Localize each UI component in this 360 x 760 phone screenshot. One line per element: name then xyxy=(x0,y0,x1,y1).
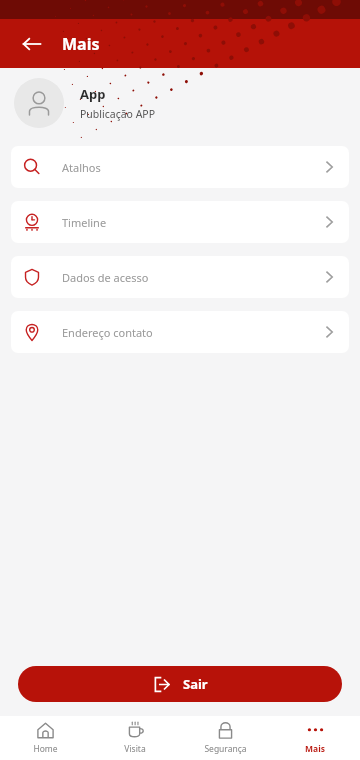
button[interactable]: Segurança xyxy=(180,716,270,760)
button[interactable]: Home xyxy=(0,716,90,760)
button[interactable]: Visita xyxy=(90,716,180,760)
button[interactable]: Timeline xyxy=(11,201,349,243)
staticText: Segurança xyxy=(204,743,247,755)
button[interactable]: Dados de acesso xyxy=(11,256,349,298)
button[interactable]: App xyxy=(0,68,360,138)
staticText: App xyxy=(80,85,106,103)
button[interactable]: Mais xyxy=(270,716,360,760)
button[interactable]: Atalhos xyxy=(11,146,349,188)
staticText: Visita xyxy=(124,743,146,755)
staticText: Endereço contato xyxy=(62,325,153,340)
staticText: Timeline xyxy=(62,215,107,230)
staticText: Sair xyxy=(183,675,208,693)
button[interactable]: Sair xyxy=(18,666,342,702)
staticText: Home xyxy=(33,743,58,755)
button[interactable]: Endereço contato xyxy=(11,311,349,353)
staticText: Dados de acesso xyxy=(62,270,149,285)
staticText: Mais xyxy=(305,743,325,755)
staticText: Mais xyxy=(62,33,100,55)
button[interactable]: Back xyxy=(14,26,50,62)
staticText: Atalhos xyxy=(62,160,101,175)
staticText: Publicação APP xyxy=(80,107,156,121)
